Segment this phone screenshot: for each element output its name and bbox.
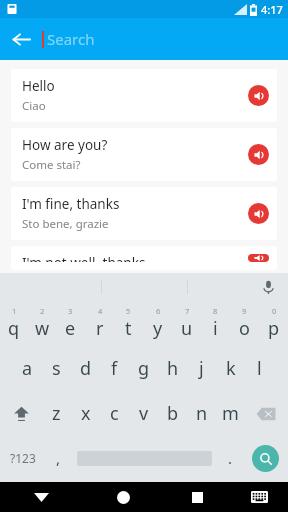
button[interactable]: ?123	[0, 436, 46, 480]
staticText: 4	[98, 306, 103, 316]
button[interactable]: Back	[0, 18, 42, 60]
button[interactable]: b	[158, 391, 187, 436]
staticText: 4:17	[261, 2, 283, 17]
button[interactable]: a	[13, 346, 42, 391]
button[interactable]: z	[42, 391, 71, 436]
button[interactable]: h	[158, 346, 187, 391]
button[interactable]: c	[100, 391, 129, 436]
staticText: g	[138, 356, 150, 381]
button[interactable]: l	[245, 346, 274, 391]
button[interactable]: f	[100, 346, 129, 391]
staticText: o	[239, 316, 250, 341]
staticText: Hello	[22, 77, 55, 95]
staticText: e	[65, 316, 76, 341]
button[interactable]: Play pronunciation	[248, 254, 269, 262]
staticText: 1	[12, 306, 17, 316]
button[interactable]: Home	[82, 482, 164, 512]
staticText: n	[196, 401, 208, 426]
staticText: Come stai?	[22, 157, 81, 173]
staticText: 3	[68, 306, 73, 316]
button[interactable]: Shift	[0, 391, 42, 436]
staticText: 8	[213, 306, 218, 316]
staticText: x	[81, 401, 91, 426]
staticText: y	[153, 316, 163, 341]
staticText: v	[139, 401, 149, 426]
staticText: ?123	[10, 450, 36, 466]
button[interactable]: d	[71, 346, 100, 391]
staticText: p	[268, 316, 280, 341]
button[interactable]: v	[129, 391, 158, 436]
staticText: h	[167, 356, 179, 381]
button[interactable]: 5	[114, 301, 143, 346]
button[interactable]: 0	[259, 301, 288, 346]
staticText: l	[257, 356, 262, 381]
staticText: i	[213, 316, 218, 341]
staticText: u	[181, 316, 193, 341]
button[interactable]: j	[187, 346, 216, 391]
staticText: k	[226, 356, 236, 381]
staticText: c	[110, 401, 119, 426]
staticText: I'm not well, thanks	[22, 254, 146, 262]
button[interactable]: k	[216, 346, 245, 391]
staticText: r	[96, 316, 104, 341]
button[interactable]: m	[216, 391, 245, 436]
button[interactable]: 9	[230, 301, 259, 346]
staticText: a	[22, 356, 33, 381]
staticText: s	[52, 356, 61, 381]
staticText: b	[167, 401, 179, 426]
staticText: Search	[47, 29, 95, 49]
button[interactable]: 4	[85, 301, 114, 346]
button[interactable]: 3	[56, 301, 85, 346]
button[interactable]: I'm not well, thanks	[11, 246, 277, 270]
button[interactable]: Switch keyboard	[230, 482, 288, 512]
staticText: .	[228, 448, 233, 468]
button[interactable]: ,	[46, 436, 71, 480]
staticText: 5	[126, 306, 131, 316]
staticText: q	[8, 316, 20, 341]
staticText: Sto bene, grazie	[22, 216, 109, 232]
staticText: t	[125, 316, 132, 341]
staticText: 9	[242, 306, 247, 316]
button[interactable]: Search	[252, 445, 279, 472]
staticText: w	[35, 316, 50, 341]
button[interactable]: n	[187, 391, 216, 436]
button[interactable]: 1	[0, 301, 28, 346]
button[interactable]: How are you?	[11, 128, 277, 181]
staticText: z	[52, 401, 61, 426]
staticText: ,	[56, 448, 61, 468]
staticText: 6	[156, 306, 161, 316]
button[interactable]: 6	[143, 301, 172, 346]
staticText: 7	[185, 306, 190, 316]
button[interactable]: Play pronunciation	[248, 203, 269, 224]
button[interactable]: Backspace	[245, 391, 288, 436]
staticText: d	[80, 356, 92, 381]
staticText: How are you?	[22, 136, 108, 154]
button[interactable]: 7	[172, 301, 201, 346]
staticText: Ciao	[22, 98, 46, 114]
button[interactable]: s	[42, 346, 71, 391]
button[interactable]: Hello	[11, 69, 277, 122]
staticText: j	[199, 356, 204, 381]
button[interactable]: Recent apps	[164, 482, 230, 512]
button[interactable]: 8	[201, 301, 230, 346]
button[interactable]: Play pronunciation	[248, 85, 269, 106]
button[interactable]: Hide keyboard	[0, 482, 82, 512]
button[interactable]: .	[218, 436, 243, 480]
staticText: f	[111, 356, 118, 381]
button[interactable]: Play pronunciation	[248, 144, 269, 165]
staticText: 0	[272, 306, 277, 316]
staticText: m	[222, 401, 239, 426]
staticText: I'm fine, thanks	[22, 195, 120, 213]
button[interactable]: 2	[28, 301, 56, 346]
button[interactable]	[71, 436, 218, 480]
button[interactable]: g	[129, 346, 158, 391]
button[interactable]: Voice input	[258, 277, 278, 297]
staticText: 2	[40, 306, 45, 316]
button[interactable]: x	[71, 391, 100, 436]
button[interactable]: I'm fine, thanks	[11, 187, 277, 240]
